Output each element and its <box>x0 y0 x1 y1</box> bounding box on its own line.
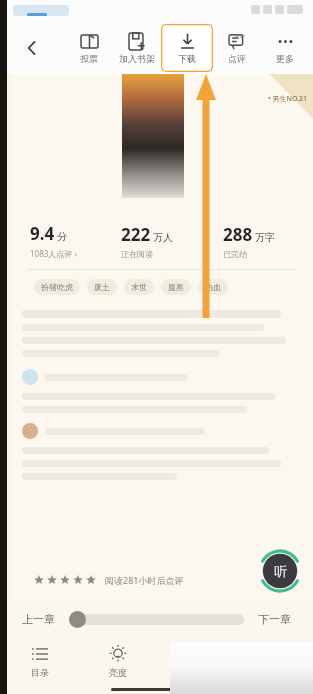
staticText: 1083人点评 › <box>30 248 77 259</box>
staticText: 腹黑 <box>168 282 184 292</box>
staticText: 目录 <box>31 667 49 678</box>
button[interactable]: 222 <box>121 223 213 259</box>
staticText: 已完结 <box>223 249 247 259</box>
staticText: 扮猪吃虎 <box>41 282 73 292</box>
button[interactable]: 更多 <box>261 24 309 72</box>
button[interactable]: 9.4 <box>30 222 113 259</box>
staticText: 末世 <box>131 282 147 292</box>
staticText: 上一章 <box>22 612 55 626</box>
button[interactable]: Back <box>12 28 52 68</box>
staticText: 投票 <box>80 53 98 64</box>
staticText: 9.4 <box>30 222 55 245</box>
staticText: 222 <box>121 223 151 246</box>
staticText: 热血 <box>205 282 221 292</box>
staticText: 下载 <box>178 53 196 64</box>
staticText: 亮度 <box>109 667 127 678</box>
button[interactable]: 废土 <box>87 279 117 295</box>
staticText: 288 <box>223 223 253 246</box>
button[interactable]: 听书 <box>259 550 301 592</box>
staticText: • 男生NO.21 <box>268 94 308 104</box>
staticText: 废土 <box>94 282 110 292</box>
button[interactable]: 目录 <box>0 640 79 684</box>
staticText: 下一章 <box>258 612 291 626</box>
button[interactable]: 999+ <box>213 24 261 72</box>
staticText: 万字 <box>255 231 275 244</box>
staticText: 更多 <box>276 53 294 64</box>
button[interactable]: 上一章 <box>18 608 59 630</box>
staticText: 万人 <box>153 231 173 244</box>
button[interactable]: 亮度 <box>79 640 157 684</box>
button[interactable]: 下一章 <box>254 608 295 630</box>
staticText: 阅读281小时后点评 <box>105 574 184 586</box>
button[interactable]: 腹黑 <box>161 279 191 295</box>
button[interactable]: 末世 <box>124 279 154 295</box>
staticText: 点评 <box>228 53 246 64</box>
button[interactable]: 热血 <box>198 279 228 295</box>
button[interactable]: 288 <box>223 223 313 259</box>
staticText: 加入书架 <box>119 53 155 64</box>
staticText: 听 <box>274 563 287 579</box>
button[interactable]: 扮猪吃虎 <box>34 279 80 295</box>
staticText: 正在阅读 <box>121 249 153 259</box>
button[interactable]: 加入书架 <box>113 24 161 72</box>
staticText: 分 <box>57 230 67 243</box>
button[interactable]: 下载 <box>161 24 213 72</box>
button[interactable]: 投票 <box>65 24 113 72</box>
staticText: 999+ <box>234 33 246 40</box>
